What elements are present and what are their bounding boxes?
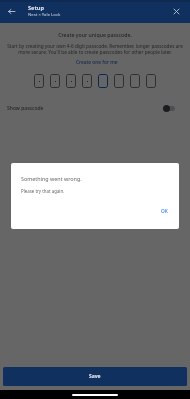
staticText: Create one for me	[76, 59, 118, 66]
staticText: Please try that again.	[21, 188, 65, 194]
button[interactable]: OK	[159, 206, 170, 217]
button[interactable]: Passcode digit	[50, 74, 60, 88]
staticText: Start by creating your own 4-6 digit pas…	[4, 43, 186, 55]
button[interactable]: Passcode digit	[130, 74, 140, 88]
button[interactable]: Passcode digit	[34, 74, 44, 88]
button[interactable]: Passcode digit	[114, 74, 124, 88]
staticText: Nest × Yale Lock	[28, 12, 61, 18]
button[interactable]: Passcode digit	[146, 74, 156, 88]
staticText: Create your unique passcode.	[6, 31, 184, 38]
button[interactable]: Back	[0, 0, 23, 23]
staticText: OK	[161, 208, 168, 215]
button[interactable]: Passcode digit	[66, 74, 76, 88]
staticText: Save	[89, 373, 101, 380]
button[interactable]: Close	[165, 0, 188, 23]
button[interactable]: Passcode digit	[98, 74, 108, 88]
button[interactable]: Show passcode	[0, 99, 190, 117]
button[interactable]: Passcode digit	[82, 74, 92, 88]
staticText: Show passcode	[7, 105, 44, 112]
button[interactable]: Save	[3, 367, 187, 386]
staticText: Something went wrong.	[21, 175, 82, 182]
button[interactable]: Create one for me	[74, 58, 120, 67]
staticText: Setup	[28, 4, 45, 12]
